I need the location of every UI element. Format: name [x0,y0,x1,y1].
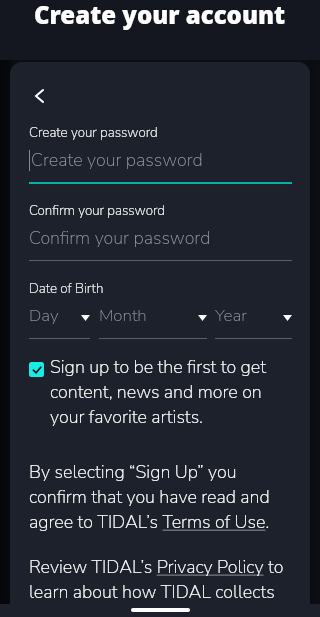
button[interactable]: Month [99,304,207,339]
staticText: Create your password [31,148,203,172]
staticText: Create your account [34,0,286,31]
staticText: Month [99,304,147,327]
button[interactable]: Back [24,81,54,111]
staticText: By selecting “Sign Up” you confirm that … [29,460,292,535]
staticText: Year [215,304,247,327]
button[interactable]: Day [29,304,90,339]
button[interactable]: Sign up to be the first to get content, … [29,355,292,430]
staticText: Confirm your password [29,226,211,250]
staticText: Date of Birth [29,279,104,297]
staticText: Day [29,304,59,327]
staticText: Create your password [29,123,158,141]
staticText: Sign up to be the first to get content, … [50,355,292,430]
staticText: Review TIDAL’s Privacy Policy to learn a… [29,555,292,604]
staticText: Confirm your password [29,201,166,219]
button[interactable]: Year [215,304,292,339]
